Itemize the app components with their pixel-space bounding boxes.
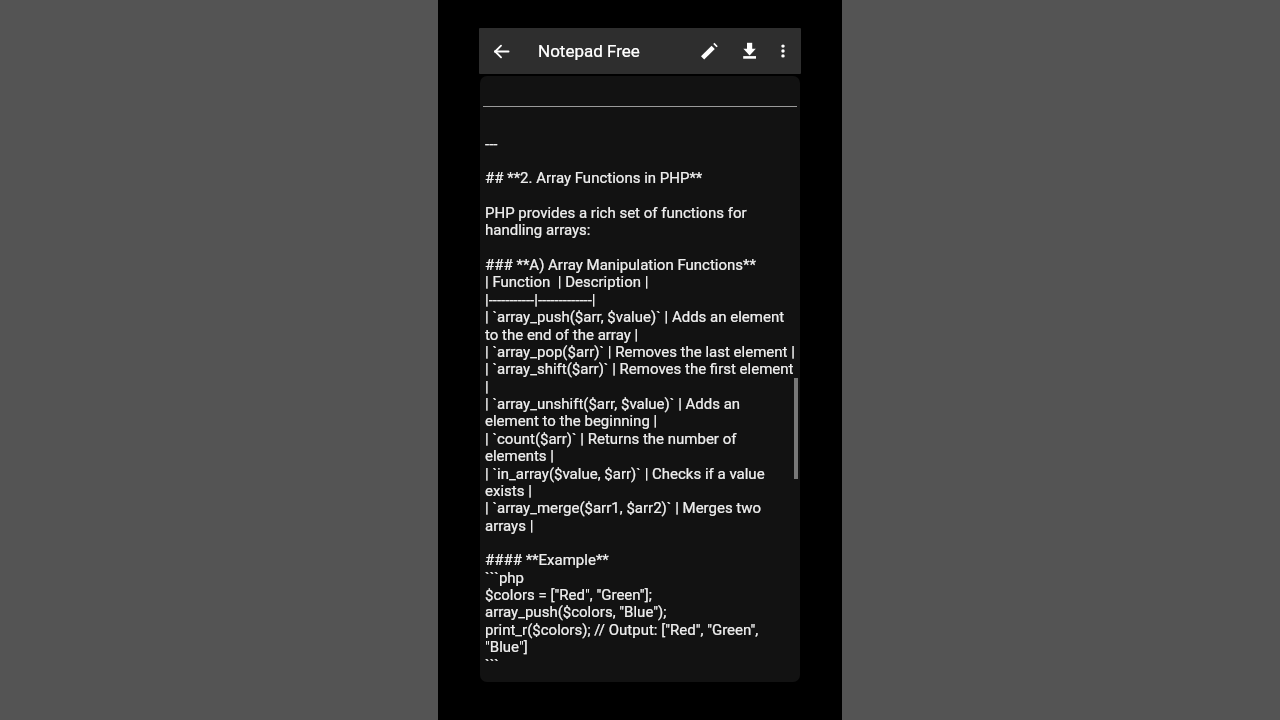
staticText: print_r($colors); // Output: ["Red", "Gr… <box>485 621 759 639</box>
button[interactable]: Back <box>487 37 516 66</box>
staticText: ``` <box>485 656 499 674</box>
staticText: handling arrays: <box>485 221 591 239</box>
staticText: ### **A) Array Manipulation Functions** <box>485 256 756 274</box>
staticText: ## **2. Array Functions in PHP** <box>485 169 703 187</box>
staticText: arrays | <box>485 517 534 535</box>
staticText: --- <box>485 135 498 153</box>
staticText: array_push($colors, "Blue"); <box>485 603 667 621</box>
staticText: | `array_shift($arr)` | Removes the firs… <box>485 360 794 378</box>
staticText: element to the beginning | <box>485 412 658 430</box>
staticText: $colors = ["Red", "Green"]; <box>485 586 652 604</box>
staticText: | `count($arr)` | Returns the number of <box>485 430 737 448</box>
staticText: #### **Example** <box>485 551 609 569</box>
staticText: PHP provides a rich set of functions for <box>485 204 747 222</box>
button[interactable]: More options <box>769 37 797 65</box>
staticText: | Function | Description | <box>485 273 649 291</box>
staticText: | <box>485 378 489 396</box>
staticText: ```php <box>485 569 525 587</box>
staticText: to the end of the array | <box>485 326 639 344</box>
button[interactable]: --- <box>480 76 800 682</box>
staticText: "Blue"] <box>485 638 528 656</box>
staticText: | `array_pop($arr)` | Removes the last e… <box>485 343 795 361</box>
staticText: | `array_push($arr, $value)` | Adds an e… <box>485 308 785 326</box>
staticText: | `array_unshift($arr, $value)` | Adds a… <box>485 395 741 413</box>
staticText: Notepad Free <box>538 41 640 61</box>
staticText: elements | <box>485 447 554 465</box>
staticText: | `array_merge($arr1, $arr2)` | Merges t… <box>485 499 762 517</box>
staticText: exists | <box>485 482 532 500</box>
button[interactable]: Download <box>735 36 763 64</box>
staticText: |-----------|-------------| <box>485 291 596 309</box>
staticText: | `in_array($value, $arr)` | Checks if a… <box>485 465 765 483</box>
button[interactable]: Edit <box>695 37 723 65</box>
